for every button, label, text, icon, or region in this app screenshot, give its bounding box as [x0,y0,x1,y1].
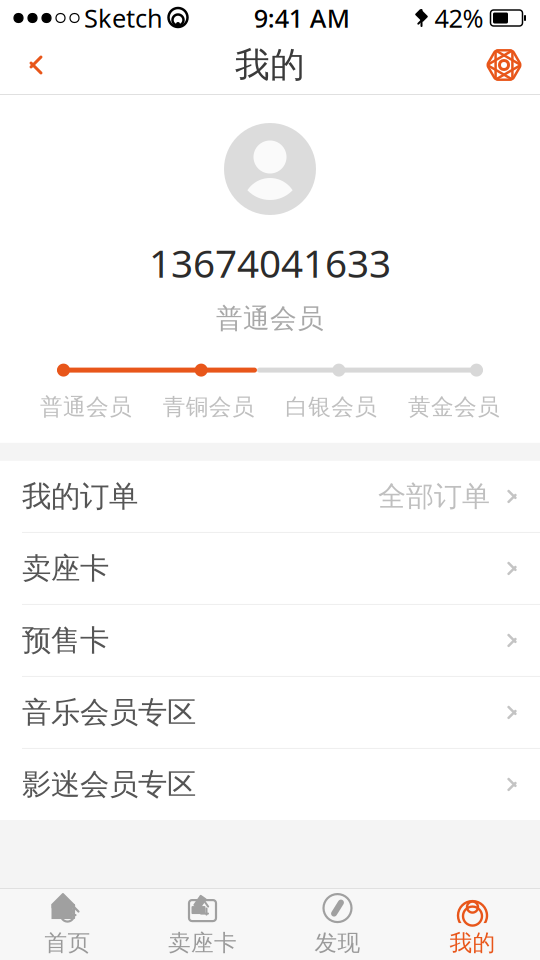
staticText: 白银会员 [285,393,377,421]
button[interactable]: 我的订单 [0,461,540,532]
button[interactable]: 预售卡 [0,605,540,676]
staticText: 我的 [449,929,495,957]
staticText: Sketch [84,1,163,35]
staticText: 卖座卡 [168,929,237,957]
staticText: 影迷会员专区 [22,766,196,802]
button[interactable]: 音乐会员专区 [0,677,540,748]
button[interactable]: 影迷会员专区 [0,749,540,820]
button[interactable]: 发现 [270,889,405,960]
staticText: 卖座卡 [22,550,109,586]
staticText: 普通会员 [40,393,132,421]
staticText: 预售卡 [22,622,109,658]
staticText: 普通会员 [216,302,324,335]
staticText: 我的订单 [22,478,138,514]
button[interactable]: Back [6,36,66,94]
button[interactable]: Settings [474,36,534,94]
button[interactable]: 卖座卡 [0,533,540,604]
staticText: 全部订单 [378,479,490,514]
staticText: 9:41 AM [254,1,350,35]
staticText: 音乐会员专区 [22,694,196,730]
button[interactable]: 首页 [0,889,135,960]
staticText: 青铜会员 [163,393,255,421]
staticText: 13674041633 [149,237,391,288]
staticText: 黄金会员 [408,393,500,421]
button[interactable]: 我的 [405,889,540,960]
button[interactable]: 卖座卡 [135,889,270,960]
staticText: 42% [434,1,483,35]
staticText: 发现 [314,929,360,957]
staticText: 首页 [44,929,90,957]
staticText: 我的 [235,44,305,86]
